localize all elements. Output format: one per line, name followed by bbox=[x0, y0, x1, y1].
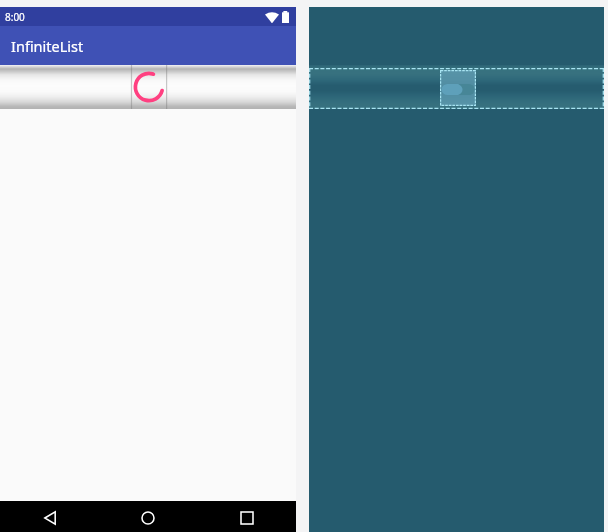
button[interactable]: Back bbox=[0, 501, 98, 532]
button[interactable]: Home bbox=[98, 501, 197, 532]
staticText: 8:00 bbox=[5, 10, 25, 24]
staticText: InfiniteList bbox=[11, 36, 84, 56]
button[interactable]: Loading more items bbox=[131, 65, 167, 109]
button[interactable]: Recent apps bbox=[197, 501, 296, 532]
